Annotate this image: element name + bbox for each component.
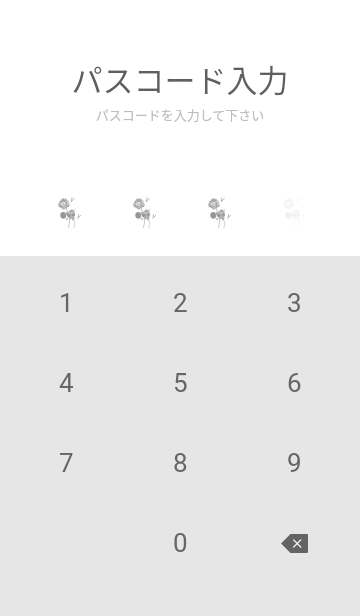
- staticText: パスコードを入力して下さい: [0, 105, 360, 124]
- button[interactable]: 0: [123, 503, 237, 583]
- button[interactable]: 2: [123, 263, 237, 343]
- button[interactable]: 8: [123, 423, 237, 503]
- staticText: 7: [59, 448, 74, 478]
- staticText: 5: [173, 368, 188, 398]
- staticText: 8: [173, 448, 188, 478]
- button[interactable]: 3: [237, 263, 351, 343]
- staticText: パスコード入力: [0, 56, 360, 101]
- staticText: 9: [287, 448, 302, 478]
- button[interactable]: 4: [9, 343, 123, 423]
- staticText: 2: [173, 288, 188, 318]
- button[interactable]: 6: [237, 343, 351, 423]
- staticText: 4: [59, 368, 74, 398]
- button[interactable]: Delete: [237, 503, 351, 583]
- button[interactable]: 7: [9, 423, 123, 503]
- staticText: 0: [173, 528, 188, 558]
- staticText: 6: [287, 368, 302, 398]
- button[interactable]: 1: [9, 263, 123, 343]
- staticText: 3: [287, 288, 302, 318]
- button[interactable]: 9: [237, 423, 351, 503]
- staticText: 1: [59, 288, 74, 318]
- button[interactable]: 5: [123, 343, 237, 423]
